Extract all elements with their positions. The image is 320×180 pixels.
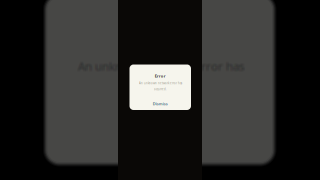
staticText: An unknown network error has bbox=[79, 57, 245, 73]
staticText: An unknown network error has bbox=[77, 58, 243, 74]
staticText: An unknown network error has bbox=[79, 58, 245, 74]
staticText: An unknown network error has bbox=[77, 57, 243, 73]
staticText: An unknown network error has bbox=[79, 59, 245, 75]
staticText: Dismiss bbox=[153, 101, 168, 106]
staticText: Error bbox=[155, 73, 166, 79]
staticText: An unknown network error has bbox=[78, 57, 244, 73]
staticText: An unknown network error has bbox=[78, 59, 244, 75]
staticText: An unknown network error has bbox=[77, 59, 243, 75]
staticText: An unknown network error has bbox=[78, 58, 244, 74]
button[interactable]: Dismiss bbox=[129, 99, 191, 108]
staticText: An unknown network error has occurred. bbox=[139, 81, 182, 91]
